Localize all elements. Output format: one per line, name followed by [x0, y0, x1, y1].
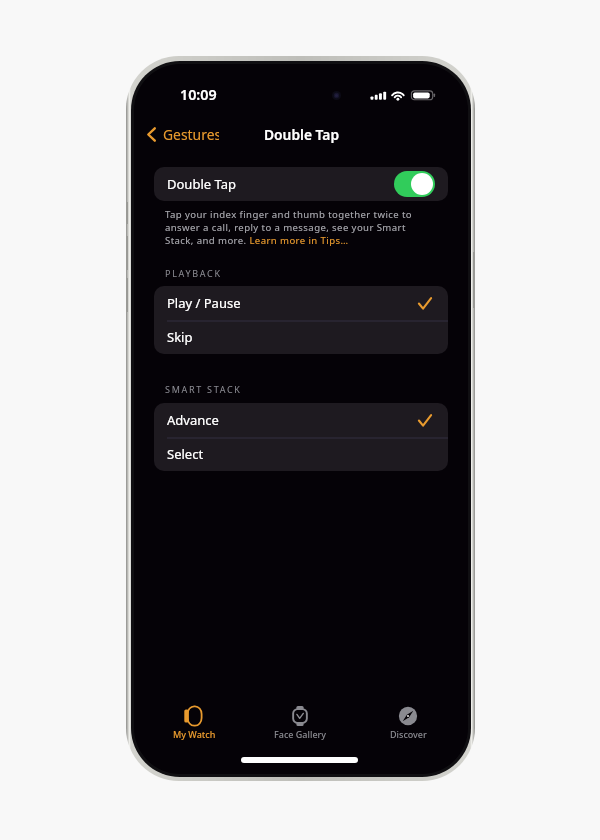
staticText: My Watch: [173, 728, 216, 740]
button[interactable]: Discover: [353, 694, 463, 749]
button[interactable]: Select: [154, 437, 448, 471]
staticText: Tap your index finger and thumb together…: [165, 208, 417, 247]
staticText: PLAYBACK: [165, 267, 222, 279]
staticText: Double Tap: [167, 175, 236, 193]
staticText: Skip: [167, 328, 193, 346]
button[interactable]: Gestures: [143, 122, 219, 147]
staticText: Play / Pause: [167, 294, 241, 312]
staticText: Advance: [167, 411, 219, 429]
button[interactable]: Double Tap: [154, 167, 448, 201]
button[interactable]: Advance: [154, 403, 448, 437]
staticText: Discover: [390, 728, 427, 740]
button[interactable]: Learn more in Tips: [248, 235, 351, 246]
button[interactable]: Double Tap toggle: [394, 171, 435, 197]
button[interactable]: My Watch: [139, 694, 249, 749]
staticText: Face Gallery: [274, 728, 327, 740]
button[interactable]: Skip: [154, 320, 448, 354]
button[interactable]: Face Gallery: [245, 694, 355, 749]
staticText: Double Tap: [264, 125, 340, 144]
staticText: Gestures: [163, 125, 219, 144]
staticText: Select: [167, 445, 204, 463]
staticText: SMART STACK: [165, 383, 242, 395]
button[interactable]: Play / Pause: [154, 286, 448, 320]
staticText: 10:09: [180, 85, 217, 104]
